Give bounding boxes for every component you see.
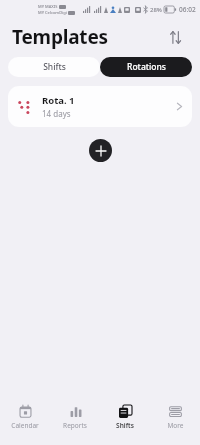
staticText: Shifts (43, 61, 66, 73)
button[interactable]: More (150, 397, 200, 437)
staticText: Calendar (11, 421, 39, 430)
button[interactable]: Sort (162, 24, 188, 50)
staticText: 14 days (42, 108, 71, 119)
staticText: Templates (12, 24, 108, 50)
staticText: Shifts (116, 421, 134, 430)
button[interactable]: Rotations (100, 57, 192, 77)
staticText: MY MAXIS (38, 4, 58, 9)
staticText: 06:02 (179, 5, 196, 14)
button[interactable]: Shifts (100, 397, 150, 437)
staticText: Rotations (127, 61, 166, 73)
button[interactable]: Reports (50, 397, 100, 437)
button[interactable]: Shifts (8, 57, 100, 77)
staticText: 28% (150, 6, 162, 14)
staticText: MY CelcomDigi (38, 10, 67, 15)
button[interactable]: Rota. 1 (8, 86, 192, 127)
staticText: Rota. 1 (42, 94, 75, 107)
staticText: More (167, 421, 184, 430)
staticText: Reports (63, 421, 87, 430)
button[interactable]: Add rotation (89, 139, 112, 162)
button[interactable]: Calendar (0, 397, 50, 437)
